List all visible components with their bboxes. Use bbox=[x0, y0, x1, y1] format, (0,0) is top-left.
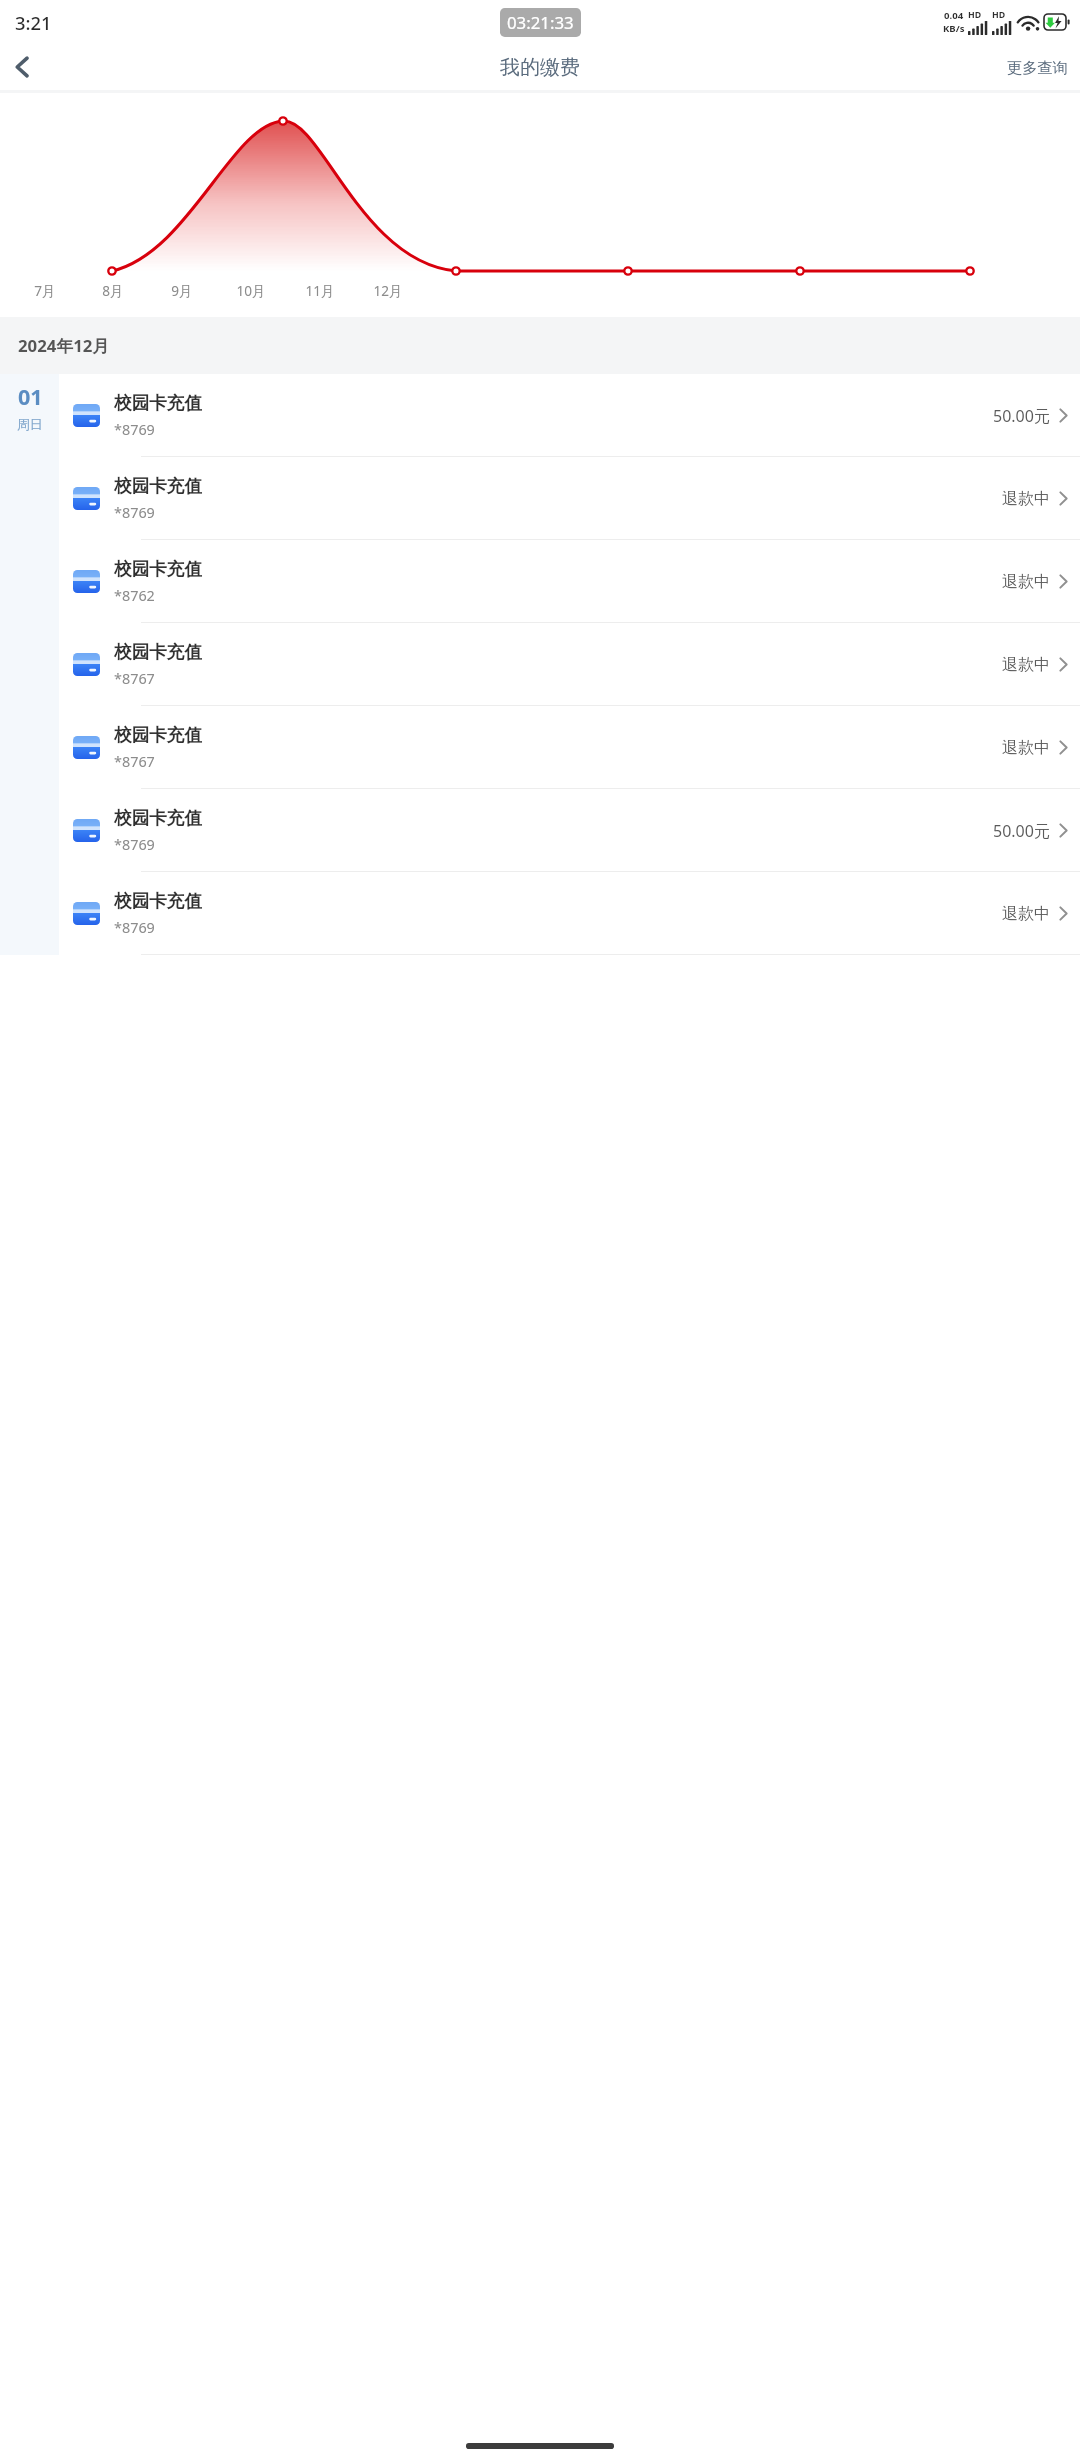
staticText: 03:21:33 bbox=[507, 11, 574, 34]
button[interactable]: 校园卡充值 bbox=[59, 540, 1080, 623]
staticText: 校园卡充值 bbox=[114, 392, 202, 414]
button[interactable]: 校园卡充值 bbox=[59, 623, 1080, 706]
staticText: *8767 bbox=[114, 669, 155, 689]
staticText: 8月 bbox=[102, 281, 124, 300]
staticText: 退款中 bbox=[1002, 489, 1050, 509]
button[interactable]: 校园卡充值 bbox=[59, 872, 1080, 955]
staticText: 退款中 bbox=[1002, 904, 1050, 924]
staticText: 11月 bbox=[305, 281, 335, 300]
staticText: 更多查询 bbox=[1007, 58, 1068, 77]
staticText: 校园卡充值 bbox=[114, 890, 202, 912]
staticText: 校园卡充值 bbox=[114, 558, 202, 580]
staticText: 退款中 bbox=[1002, 655, 1050, 675]
staticText: 50.00元 bbox=[993, 405, 1050, 427]
staticText: 我的缴费 bbox=[500, 55, 580, 80]
staticText: 9月 bbox=[171, 281, 193, 300]
button[interactable]: 更多查询 bbox=[995, 44, 1080, 90]
button[interactable]: Back bbox=[0, 45, 44, 89]
button[interactable]: 校园卡充值 bbox=[59, 706, 1080, 789]
button[interactable]: 校园卡充值 bbox=[59, 374, 1080, 457]
staticText: 校园卡充值 bbox=[114, 807, 202, 829]
staticText: 退款中 bbox=[1002, 572, 1050, 592]
staticText: 12月 bbox=[373, 281, 403, 300]
staticText: 校园卡充值 bbox=[114, 641, 202, 663]
staticText: *8762 bbox=[114, 586, 155, 606]
staticText: HD bbox=[992, 9, 1006, 21]
staticText: 2024年12月 bbox=[18, 334, 110, 357]
button[interactable]: 校园卡充值 bbox=[59, 457, 1080, 540]
staticText: 10月 bbox=[236, 281, 266, 300]
staticText: 7月 bbox=[34, 281, 56, 300]
staticText: HD bbox=[968, 9, 982, 21]
staticText: 0.04 bbox=[944, 9, 964, 22]
staticText: 退款中 bbox=[1002, 738, 1050, 758]
staticText: *8767 bbox=[114, 752, 155, 772]
staticText: KB/s bbox=[943, 22, 965, 35]
staticText: 01 bbox=[18, 382, 43, 411]
staticText: 50.00元 bbox=[993, 820, 1050, 842]
staticText: *8769 bbox=[114, 420, 155, 440]
staticText: *8769 bbox=[114, 503, 155, 523]
staticText: 周日 bbox=[17, 417, 43, 433]
staticText: 校园卡充值 bbox=[114, 724, 202, 746]
staticText: 3:21 bbox=[15, 10, 52, 35]
staticText: *8769 bbox=[114, 835, 155, 855]
button[interactable]: 校园卡充值 bbox=[59, 789, 1080, 872]
staticText: *8769 bbox=[114, 918, 155, 938]
staticText: 校园卡充值 bbox=[114, 475, 202, 497]
